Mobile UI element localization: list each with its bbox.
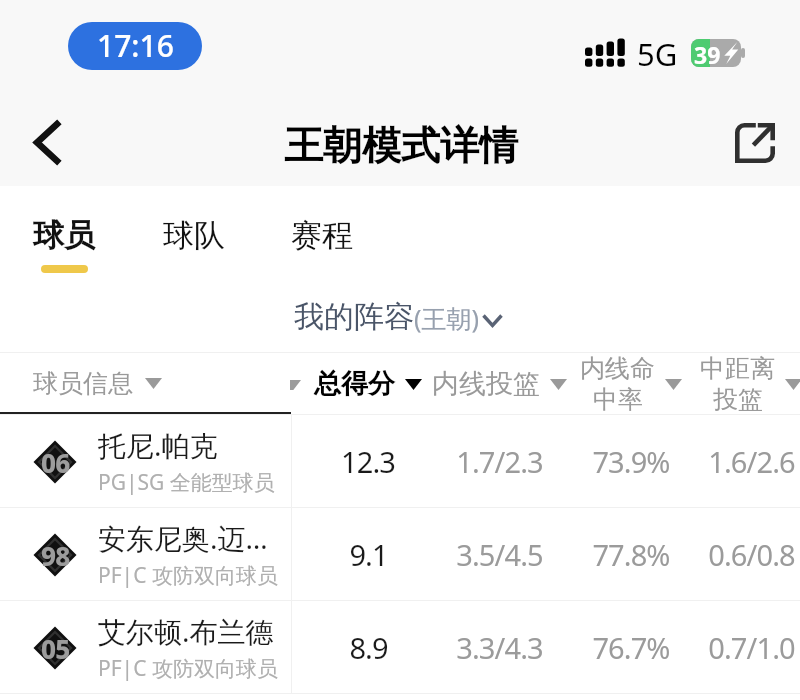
staticText: 39 <box>694 39 721 67</box>
staticText: 我的阵容 <box>294 298 414 336</box>
staticText: PF|C 攻防双向球员 <box>98 561 278 590</box>
staticText: 1.7/2.3 <box>456 442 543 481</box>
staticText: 内线命 <box>580 353 655 384</box>
staticText: 98 <box>41 538 70 573</box>
button[interactable]: 05 <box>0 601 800 694</box>
staticText: (王朝) <box>414 301 480 335</box>
staticText: 05 <box>41 631 70 666</box>
button[interactable]: 总得分 <box>288 352 448 415</box>
staticText: 赛程 <box>291 216 353 255</box>
staticText: 安东尼奥.迈… <box>98 519 268 557</box>
staticText: PG|SG 全能型球员 <box>98 468 275 497</box>
staticText: 17:16 <box>97 25 174 66</box>
staticText: 77.8% <box>592 535 670 574</box>
button[interactable]: 中距离 <box>671 352 800 415</box>
staticText: 5G <box>637 33 678 75</box>
staticText: PF|C 攻防双向球员 <box>98 654 278 683</box>
staticText: 9.1 <box>349 535 388 574</box>
staticText: 球员信息 <box>33 368 133 399</box>
button[interactable]: 球队 <box>151 210 237 261</box>
staticText: 76.7% <box>592 628 670 667</box>
button[interactable]: 内线投篮 <box>419 352 579 415</box>
staticText: 中距离 <box>700 353 775 384</box>
button[interactable]: Share <box>710 93 800 186</box>
staticText: 12.3 <box>341 442 395 481</box>
staticText: 艾尔顿.布兰德 <box>98 612 274 650</box>
staticText: 球员 <box>33 216 95 255</box>
staticText: 王朝模式详情 <box>284 121 518 170</box>
staticText: 06 <box>41 445 70 480</box>
staticText: 0.7/1.0 <box>708 628 795 667</box>
button[interactable]: 98 <box>0 508 800 601</box>
staticText: 3.5/4.5 <box>456 535 543 574</box>
staticText: 投篮 <box>713 384 763 415</box>
staticText: 8.9 <box>349 628 388 667</box>
button[interactable]: 06 <box>0 415 800 508</box>
staticText: 总得分 <box>314 367 395 401</box>
staticText: 3.3/4.3 <box>456 628 543 667</box>
staticText: 0.6/0.8 <box>708 535 795 574</box>
staticText: 内线投篮 <box>432 367 540 401</box>
button[interactable]: Back <box>0 93 92 186</box>
button[interactable]: 我的阵容 <box>288 292 509 342</box>
button[interactable]: 赛程 <box>279 210 365 261</box>
staticText: 73.9% <box>592 442 670 481</box>
button[interactable]: 球员信息 <box>0 352 291 415</box>
staticText: 中率 <box>593 384 643 415</box>
staticText: 1.6/2.6 <box>708 442 795 481</box>
staticText: 托尼.帕克 <box>98 426 218 464</box>
button[interactable]: 内线命 <box>551 352 711 415</box>
button[interactable]: 球员 <box>21 210 107 279</box>
staticText: 球队 <box>163 216 225 255</box>
